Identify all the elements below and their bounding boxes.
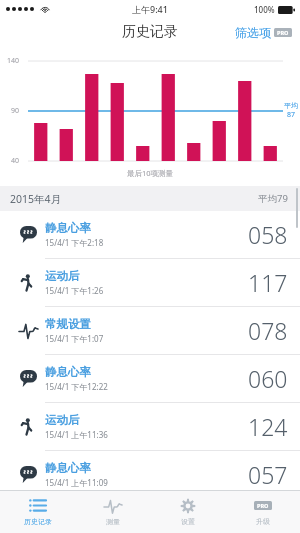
staticText: 平均 (284, 101, 298, 110)
staticText: 筛选项 (235, 25, 271, 40)
staticText: 060 (248, 363, 288, 394)
staticText: 静息心率 (45, 221, 91, 235)
staticText: 2015年4月 (10, 192, 62, 206)
button[interactable]: PRO (225, 491, 300, 533)
staticText: 40 (11, 156, 20, 166)
staticText: 078 (248, 315, 288, 346)
button[interactable]: 设置 (150, 491, 225, 533)
staticText: 静息心率 (45, 461, 91, 475)
staticText: 平均79 (258, 192, 288, 205)
staticText: 15/4/1 上午11:09 (45, 477, 108, 488)
staticText: 15/4/1 下午1:07 (45, 333, 104, 344)
staticText: 历史记录 (122, 23, 178, 41)
staticText: 上午9:41 (132, 3, 168, 15)
button[interactable]: 运动后 (0, 402, 300, 450)
staticText: 设置 (181, 517, 195, 526)
staticText: 100% (254, 4, 275, 15)
staticText: 历史记录 (24, 517, 52, 526)
button[interactable]: 运动后 (0, 258, 300, 306)
staticText: 117 (248, 267, 288, 298)
button[interactable]: 静息心率 (0, 354, 300, 402)
staticText: 90 (11, 106, 20, 116)
staticText: 常规设置 (45, 317, 91, 331)
staticText: 测量 (106, 517, 120, 526)
staticText: 升级 (256, 517, 270, 526)
staticText: 运动后 (45, 413, 80, 427)
staticText: 最后10项测量 (127, 168, 174, 178)
button[interactable]: 测量 (75, 491, 150, 533)
staticText: 15/4/1 下午2:18 (45, 237, 104, 248)
button[interactable]: 历史记录 (0, 491, 75, 533)
staticText: 140 (7, 56, 20, 66)
staticText: 运动后 (45, 269, 80, 283)
button[interactable]: 筛选项 (227, 21, 300, 44)
staticText: 057 (248, 459, 288, 490)
staticText: 058 (248, 219, 288, 250)
staticText: 124 (248, 411, 288, 442)
staticText: 15/4/1 上午11:36 (45, 429, 108, 440)
staticText: 15/4/1 下午1:26 (45, 285, 104, 296)
button[interactable]: 静息心率 (0, 211, 300, 258)
staticText: PRO (277, 29, 289, 36)
staticText: 15/4/1 下午12:22 (45, 381, 108, 392)
staticText: 静息心率 (45, 365, 91, 379)
button[interactable]: 静息心率 (0, 450, 300, 498)
staticText: PRO (257, 502, 269, 509)
button[interactable]: 常规设置 (0, 306, 300, 354)
staticText: 87 (287, 110, 296, 120)
